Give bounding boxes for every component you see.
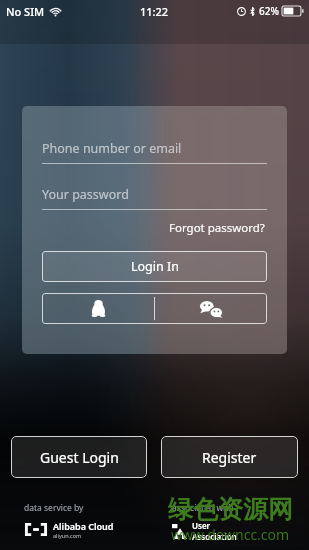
button[interactable]: Guest Login: [11, 436, 147, 478]
staticText: Phone number or email: [42, 140, 182, 157]
staticText: User: [192, 520, 211, 531]
staticText: No SIM: [6, 4, 45, 19]
staticText: associated with: [172, 502, 234, 514]
button[interactable]: Login with WeChat: [155, 293, 267, 324]
staticText: Forgot password?: [169, 220, 265, 236]
staticText: www.downcc.com: [171, 525, 290, 544]
button[interactable]: Forgot password?: [167, 218, 267, 238]
staticText: Alibaba Cloud: [53, 520, 114, 532]
button[interactable]: Login In: [42, 251, 267, 282]
staticText: Login In: [131, 258, 179, 275]
staticText: Association: [192, 531, 237, 542]
staticText: Register: [202, 448, 257, 467]
button[interactable]: Register: [161, 436, 298, 478]
staticText: aliyun.com: [53, 532, 82, 539]
staticText: 绿色资源网: [168, 494, 293, 525]
staticText: 62%: [259, 4, 279, 18]
staticText: Your password: [42, 186, 129, 203]
staticText: data service by: [24, 502, 84, 514]
button[interactable]: Login with QQ: [42, 293, 154, 324]
staticText: 11:22: [140, 4, 169, 19]
staticText: Guest Login: [40, 448, 119, 467]
